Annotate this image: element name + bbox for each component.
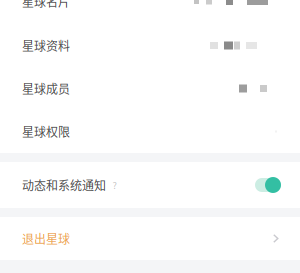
button[interactable]: 星球名片 — [0, 0, 300, 24]
staticText: 星球成员 — [22, 80, 70, 97]
staticText: 星球资料 — [22, 37, 70, 54]
staticText: ? — [112, 178, 116, 192]
button[interactable]: 退出星球 — [0, 217, 300, 260]
button[interactable]: 星球成员 — [0, 67, 300, 110]
button[interactable]: 动态和系统通知 — [0, 162, 300, 208]
staticText: 动态和系统通知 — [22, 176, 106, 194]
staticText: 星球名片 — [22, 0, 70, 10]
button[interactable]: 星球资料 — [0, 24, 300, 67]
button[interactable]: 星球权限 — [0, 110, 300, 153]
staticText: 退出星球 — [22, 230, 70, 247]
staticText: 星球权限 — [22, 123, 70, 140]
